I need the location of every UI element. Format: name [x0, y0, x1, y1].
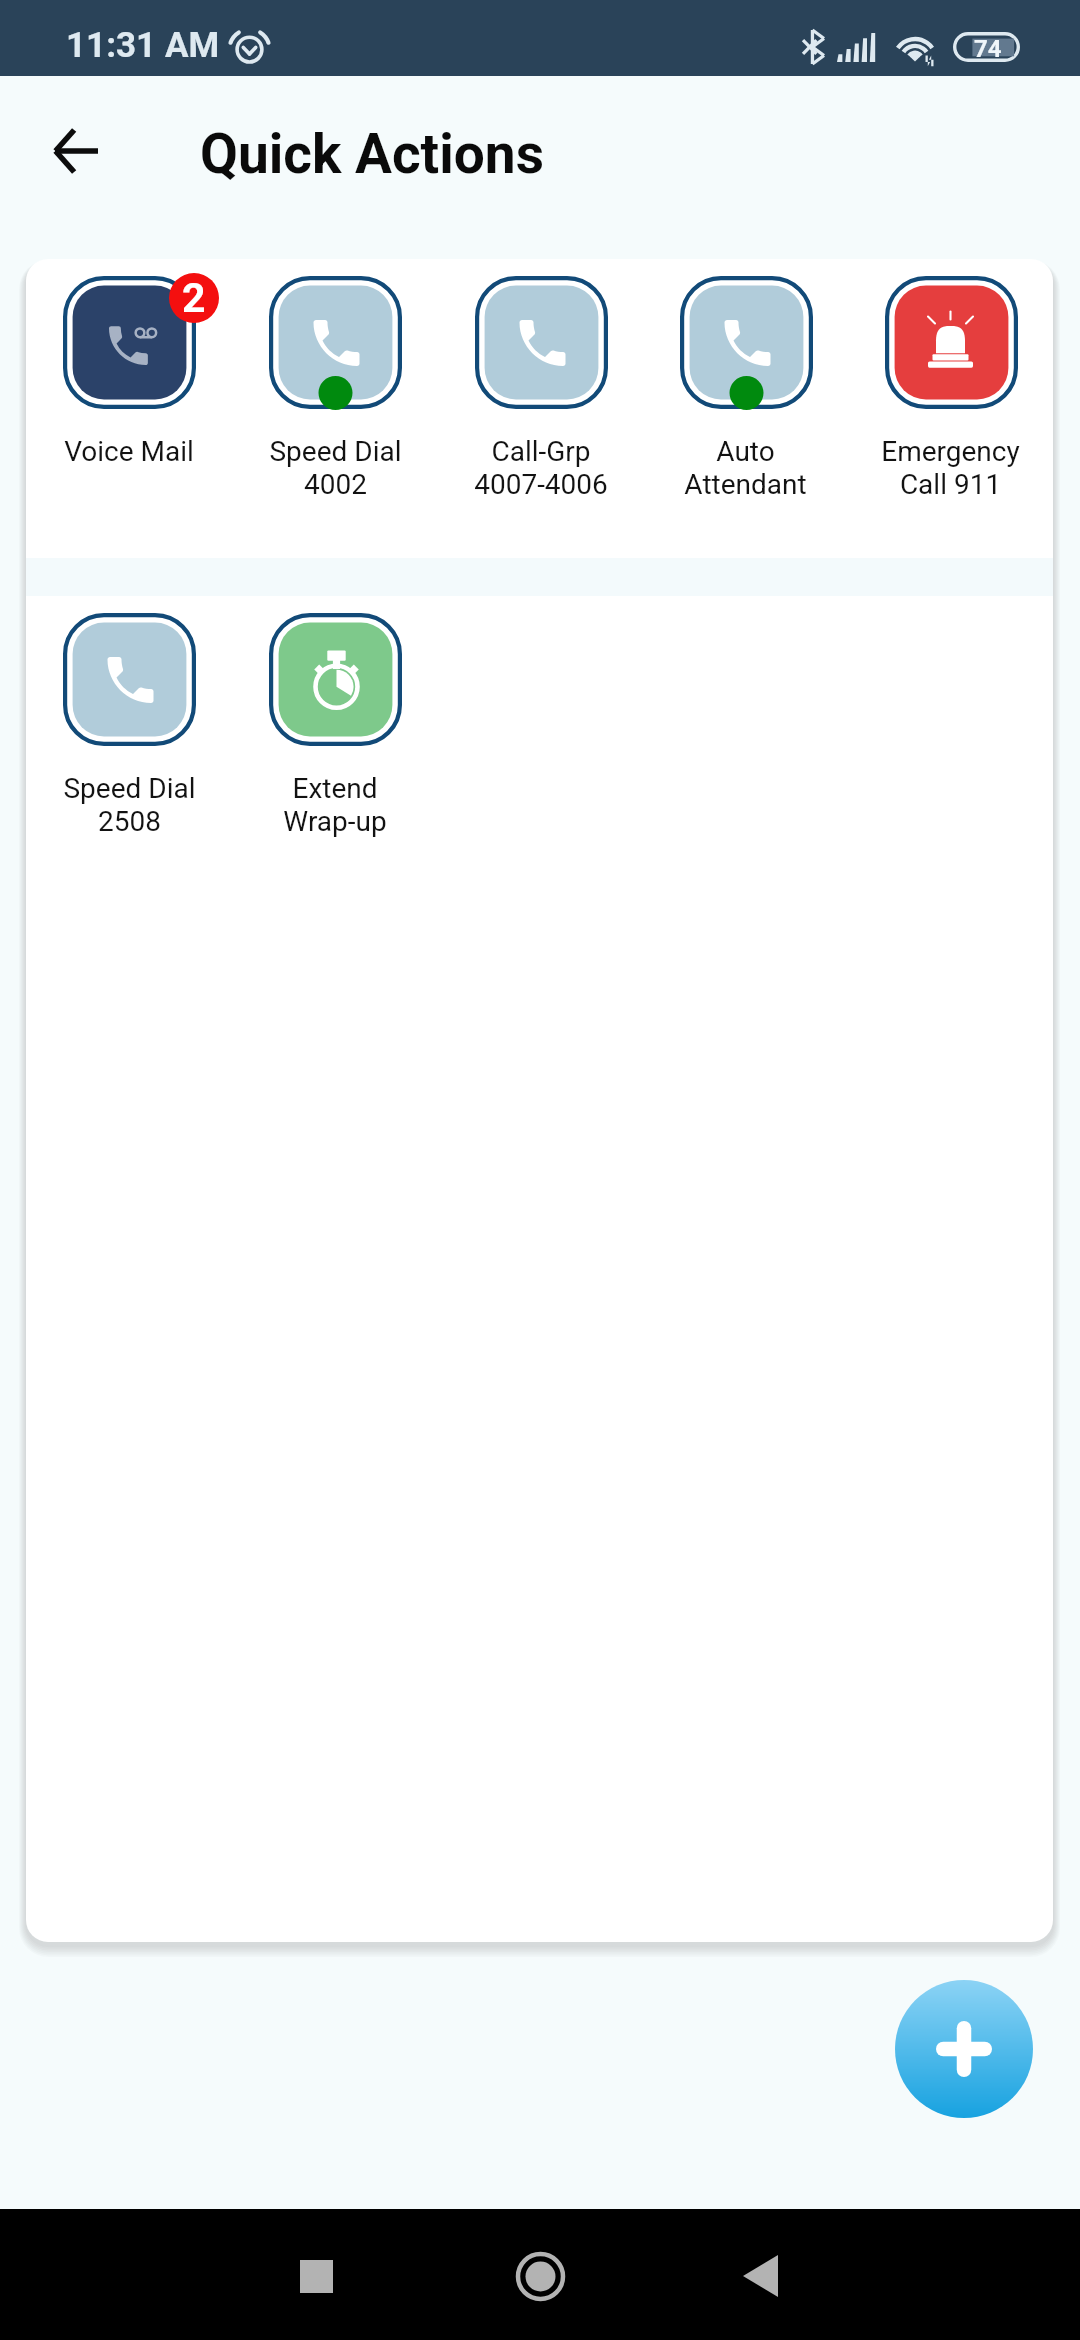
staticText: Quick Actions: [200, 122, 544, 186]
staticText: 2: [182, 274, 206, 322]
button[interactable]: Extend Wrap-up: [232, 596, 438, 895]
staticText: 11:31 AM: [66, 25, 220, 66]
button[interactable]: Speed Dial 4002: [232, 259, 438, 558]
staticText: Speed Dial 4002: [269, 435, 402, 501]
button[interactable]: Back: [27, 103, 123, 199]
staticText: Auto Attendant: [684, 435, 807, 501]
staticText: Call-Grp 4007-4006: [474, 435, 608, 501]
button[interactable]: Speed Dial 2508: [26, 596, 232, 895]
staticText: Speed Dial 2508: [63, 772, 196, 838]
button[interactable]: Recents: [271, 2231, 361, 2321]
button[interactable]: Call-Grp 4007-4006: [438, 259, 643, 558]
staticText: Voice Mail: [64, 435, 194, 468]
button[interactable]: Emergency Call 911: [848, 259, 1053, 558]
button[interactable]: Add quick action: [895, 1980, 1033, 2118]
staticText: Emergency Call 911: [881, 435, 1020, 501]
button[interactable]: Auto Attendant: [643, 259, 848, 558]
button[interactable]: Home: [495, 2231, 585, 2321]
button[interactable]: Back: [715, 2231, 805, 2321]
staticText: 74: [974, 35, 1002, 63]
staticText: Extend Wrap-up: [283, 772, 387, 838]
button[interactable]: 2: [26, 259, 232, 558]
